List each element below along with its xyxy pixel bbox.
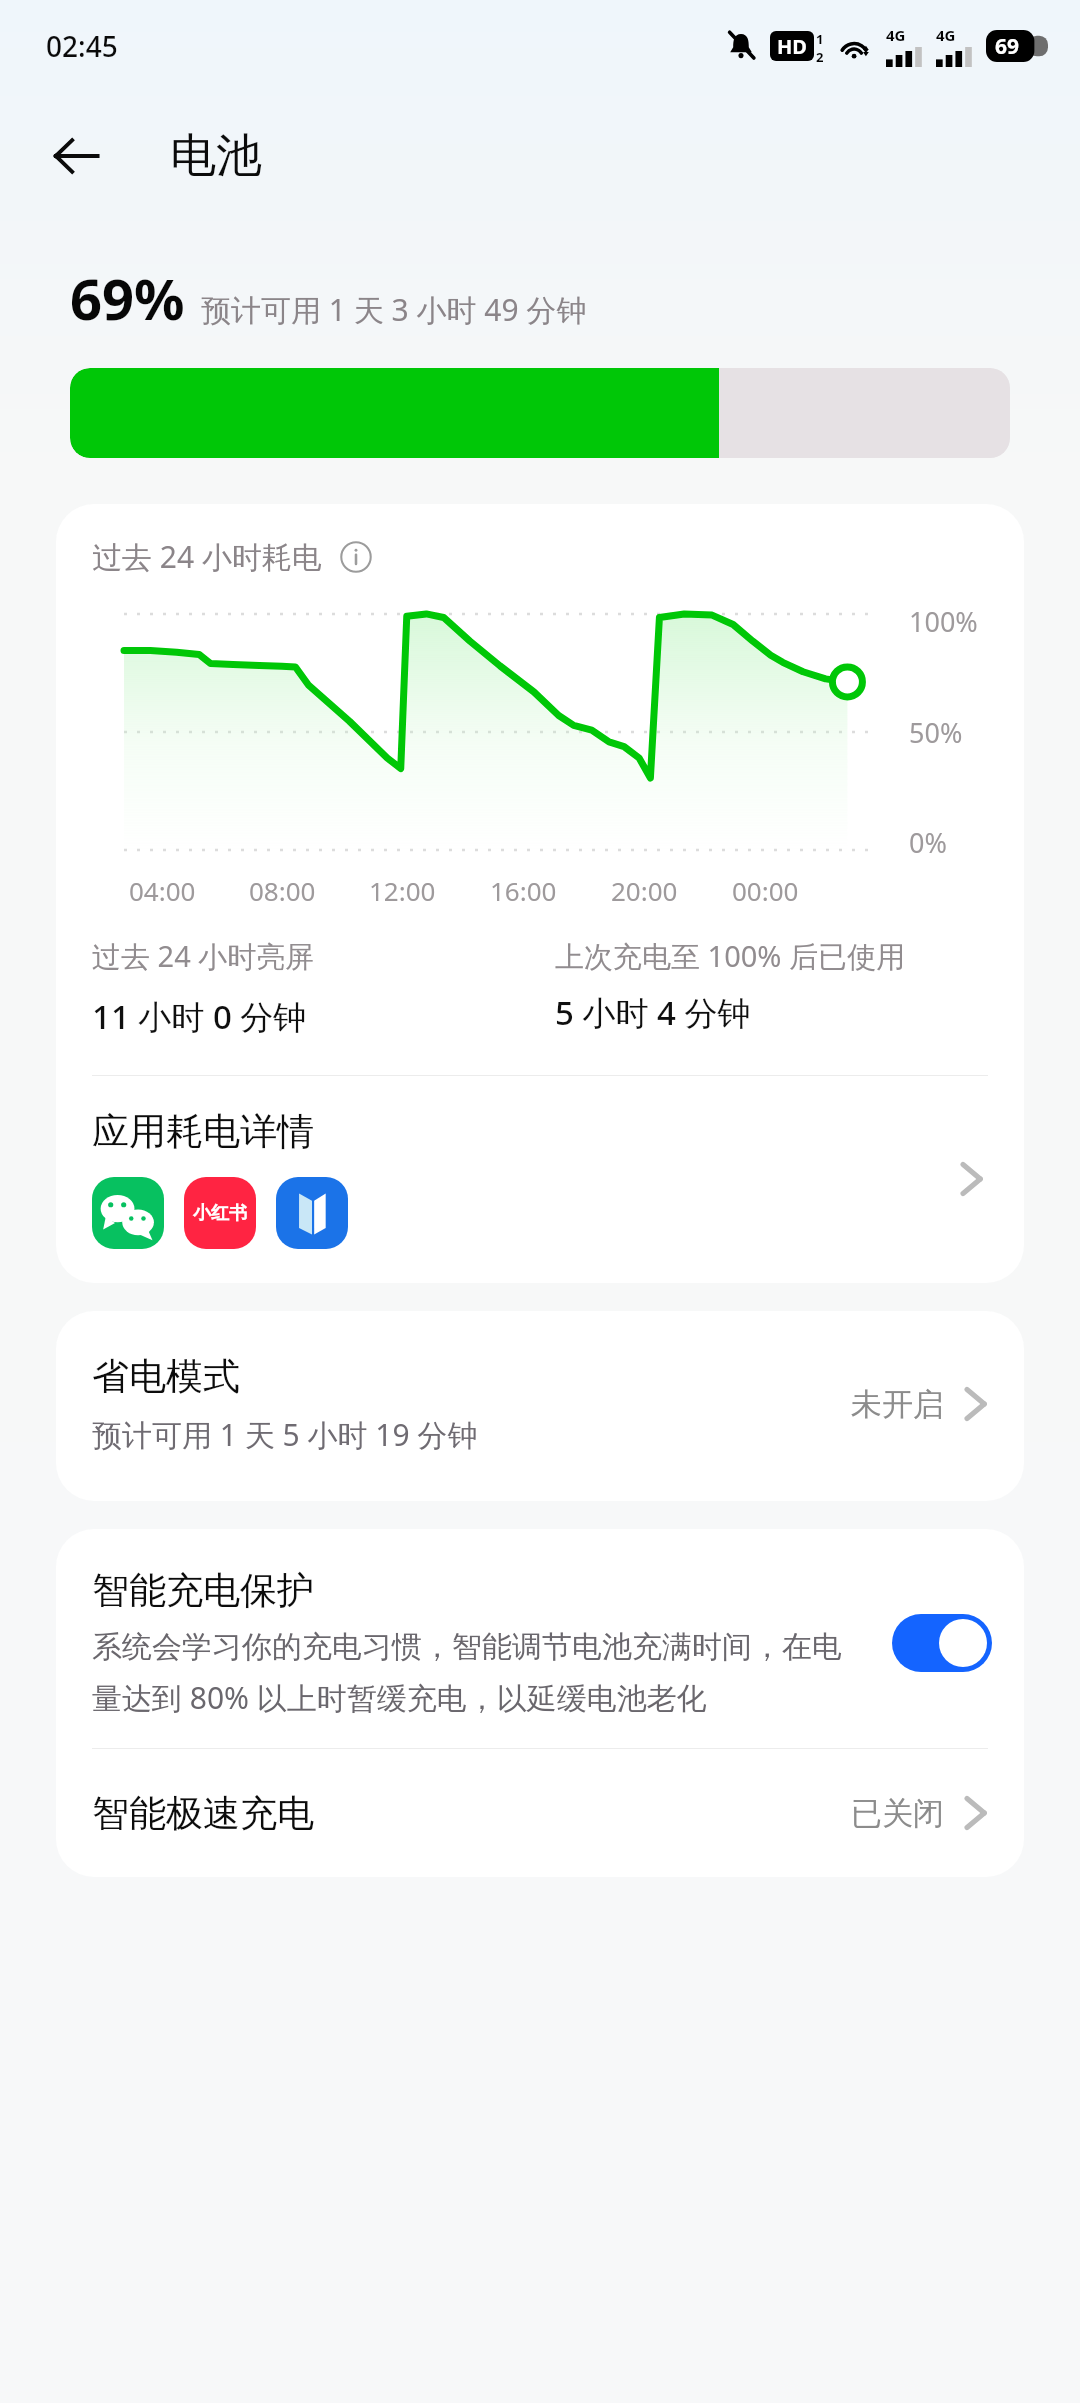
staticText: 12:00 — [369, 873, 436, 908]
staticText: 00:00 — [732, 873, 799, 908]
button[interactable]: Back — [32, 112, 120, 200]
staticText: 4G — [886, 25, 906, 45]
staticText: 省电模式 — [92, 1353, 240, 1400]
button[interactable]: 智能充电保护 — [56, 1529, 1024, 1748]
staticText: 过去 24 小时耗电 — [92, 536, 322, 577]
staticText: 02:45 — [46, 27, 118, 65]
staticText: 69% — [70, 260, 185, 336]
staticText: 100% — [909, 603, 978, 640]
staticText: 2 — [816, 48, 824, 62]
staticText: 50% — [909, 714, 963, 751]
staticText: 电池 — [170, 127, 262, 185]
staticText: 智能极速充电 — [92, 1790, 851, 1837]
button[interactable]: 智能极速充电 — [56, 1749, 1024, 1877]
staticText: 过去 24 小时亮屏 — [92, 936, 315, 976]
staticText: 预计可用 1 天 5 小时 19 分钟 — [92, 1414, 478, 1455]
staticText: 应用耗电详情 — [92, 1108, 314, 1155]
button[interactable]: 应用耗电详情 — [56, 1076, 1024, 1283]
staticText: 小红书 — [193, 1202, 247, 1225]
staticText: 5 小时 4 分钟 — [555, 990, 751, 1035]
staticText: 0% — [909, 824, 947, 861]
staticText: 04:00 — [129, 873, 196, 908]
staticText: 未开启 — [851, 1385, 944, 1424]
staticText: 16:00 — [490, 873, 557, 908]
button[interactable]: Smart charging protection — [892, 1614, 992, 1672]
staticText: 上次充电至 100% 后已使用 — [555, 936, 905, 976]
staticText: 1 — [816, 30, 824, 48]
staticText: HD — [777, 33, 807, 60]
staticText: 20:00 — [611, 873, 678, 908]
staticText: 11 小时 0 分钟 — [92, 994, 307, 1039]
button[interactable]: 省电模式 — [56, 1311, 1024, 1501]
staticText: 预计可用 1 天 3 小时 49 分钟 — [201, 289, 587, 330]
staticText: 69 — [995, 32, 1020, 61]
staticText: 智能充电保护 — [92, 1567, 314, 1614]
staticText: 4G — [936, 25, 956, 45]
staticText: 08:00 — [249, 873, 316, 908]
button[interactable]: Info — [338, 539, 374, 575]
staticText: 系统会学习你的充电习惯，智能调节电池充满时间，在电量达到 80% 以上时暂缓充电… — [92, 1628, 868, 1718]
staticText: 已关闭 — [851, 1794, 944, 1833]
